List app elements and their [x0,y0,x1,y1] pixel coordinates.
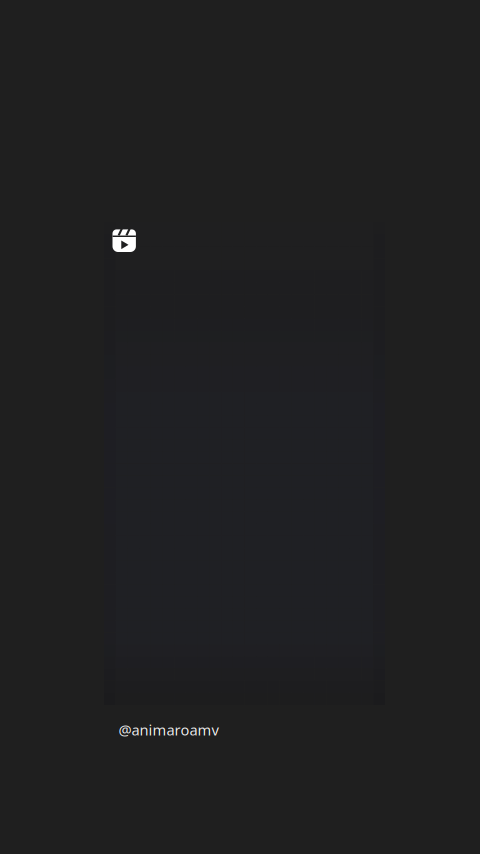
button[interactable]: @animaroamv [118,720,218,739]
staticText: @animaroamv [118,720,218,739]
button[interactable]: Reels [112,229,136,252]
